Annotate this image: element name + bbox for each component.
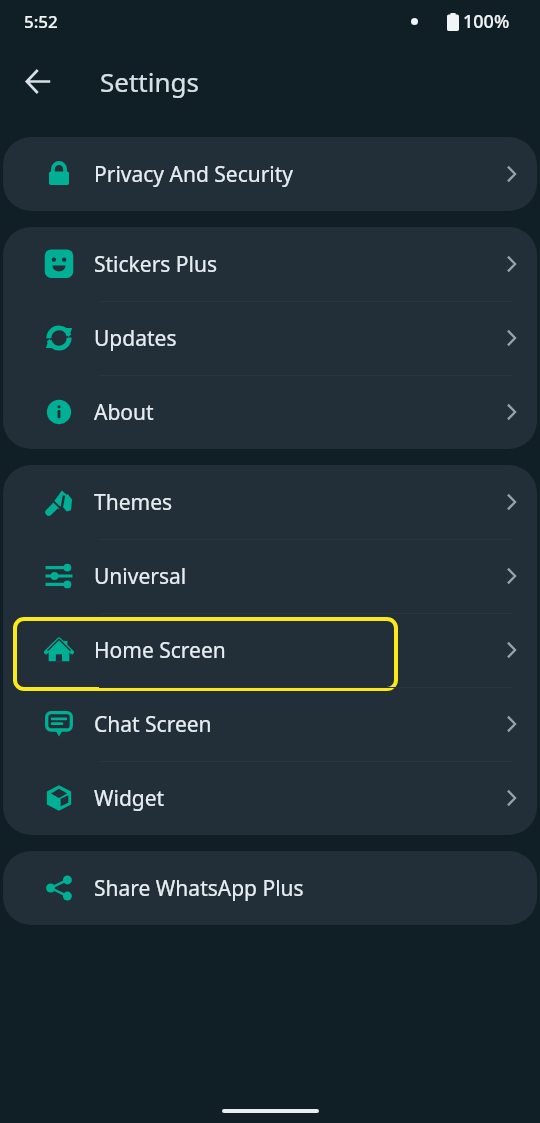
button[interactable]: Privacy And Security [3,137,537,211]
button[interactable]: Chat Screen [3,687,537,761]
button[interactable]: Stickers Plus [3,227,537,301]
button[interactable]: Updates [3,301,537,375]
staticText: Universal [94,562,187,591]
staticText: Chat Screen [94,710,212,739]
staticText: Stickers Plus [94,250,218,279]
staticText: Share WhatsApp Plus [94,874,304,903]
staticText: Themes [94,488,173,517]
staticText: Privacy And Security [94,160,294,189]
staticText: Widget [94,784,165,813]
button[interactable]: Themes [3,465,537,539]
button[interactable]: Share WhatsApp Plus [3,851,537,925]
staticText: Settings [100,64,199,99]
button[interactable]: Home Screen [3,613,537,687]
staticText: About [94,398,154,427]
staticText: Home Screen [94,636,226,665]
staticText: 5:52 [24,10,58,33]
staticText: Updates [94,324,177,353]
button[interactable]: Universal [3,539,537,613]
button[interactable]: Widget [3,761,537,835]
staticText: 100% [463,9,510,34]
button[interactable]: Back [14,57,62,105]
button[interactable]: About [3,375,537,449]
